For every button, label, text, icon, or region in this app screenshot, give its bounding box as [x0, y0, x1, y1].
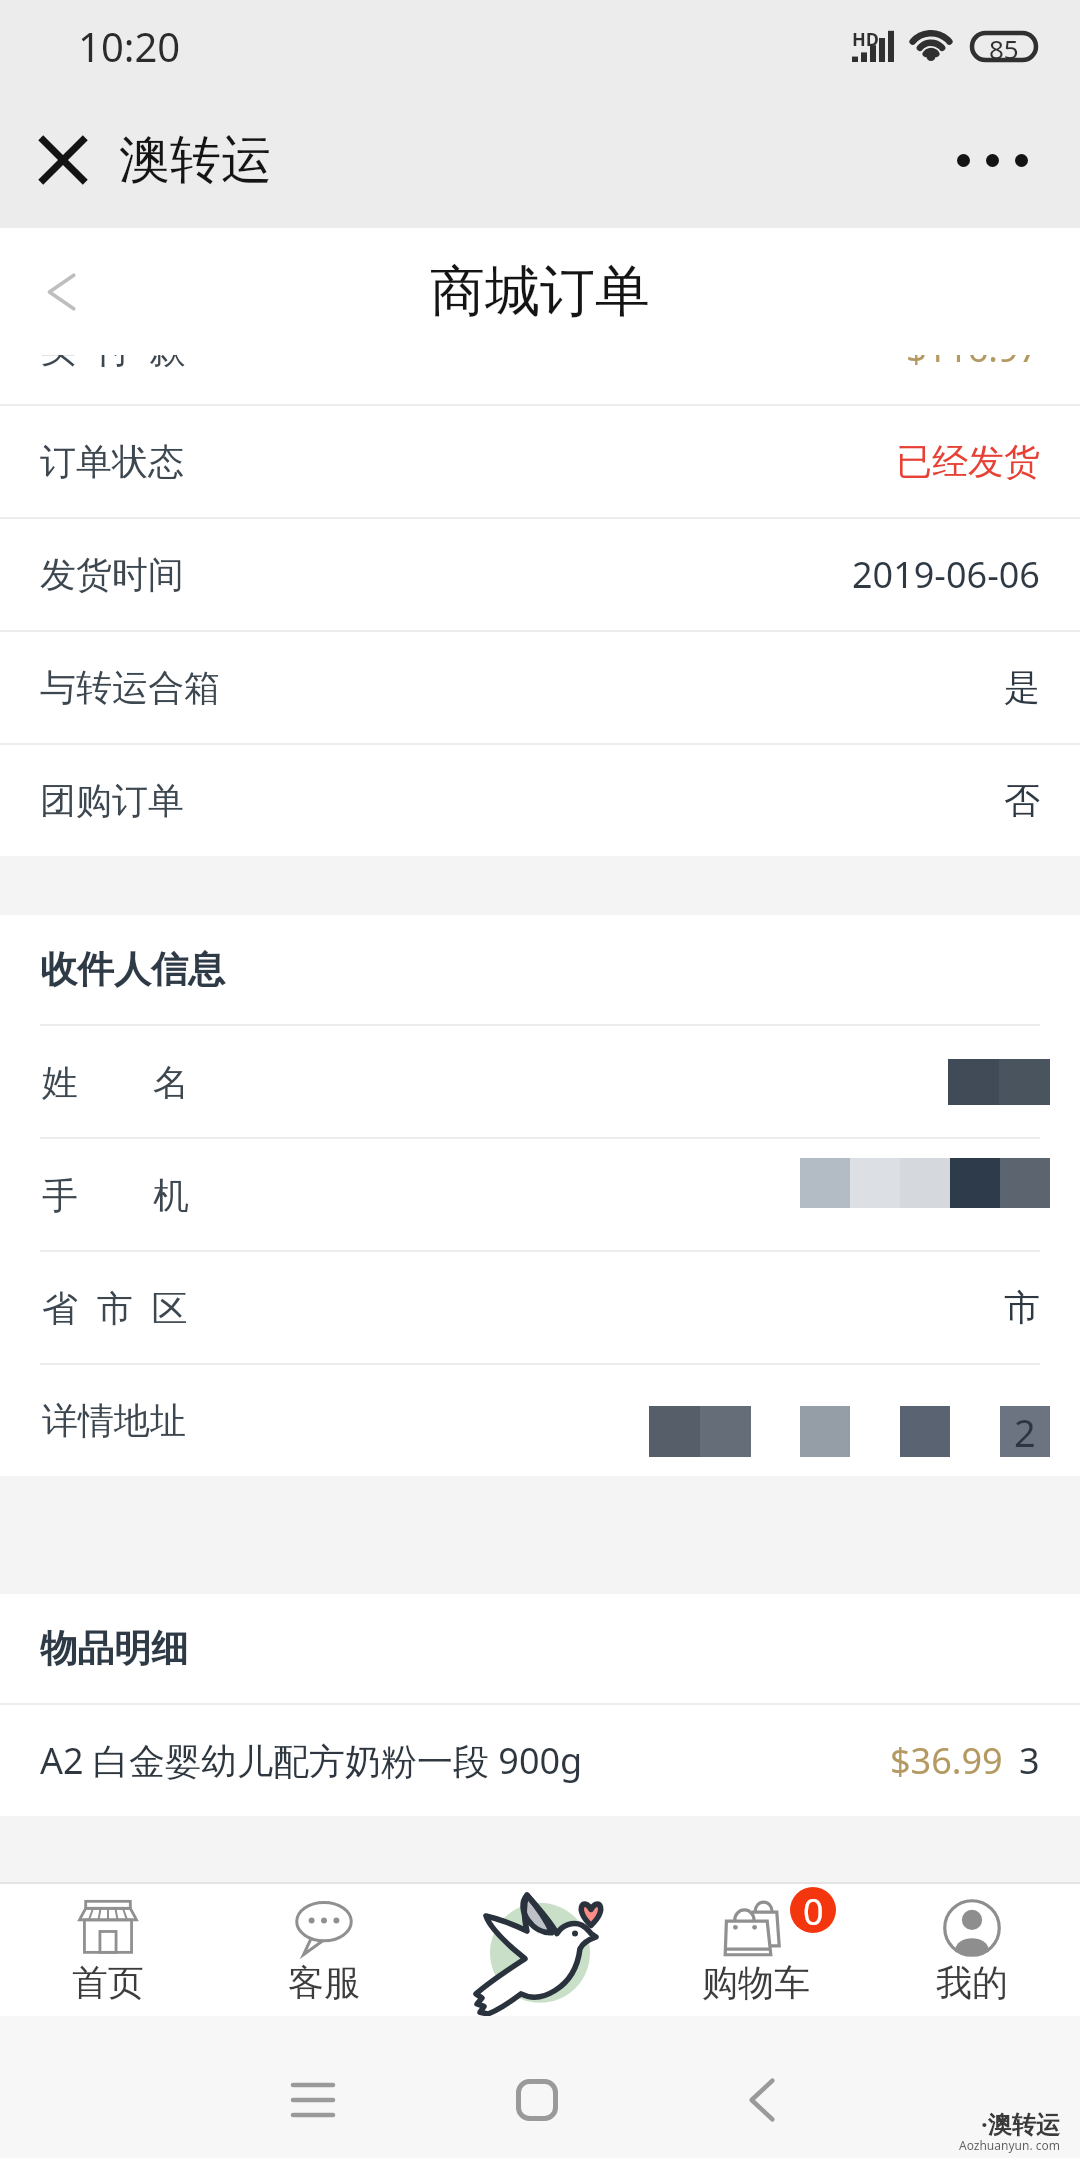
- button[interactable]: 0: [648, 1882, 864, 2016]
- staticText: 否: [1004, 778, 1040, 823]
- button[interactable]: 与转运合箱: [0, 632, 1080, 743]
- staticText: 团购订单: [40, 778, 184, 823]
- staticText: A2 白金婴幼儿配方奶粉一段 900g: [40, 1736, 583, 1785]
- staticText: 0: [803, 1887, 824, 1933]
- staticText: 物品明细: [40, 1625, 188, 1672]
- button[interactable]: 客服: [216, 1882, 432, 2016]
- staticText: 首页: [72, 1960, 144, 2005]
- button[interactable]: 首页: [0, 1882, 216, 2016]
- staticText: 详情地址: [42, 1398, 186, 1443]
- staticText: 姓 名: [42, 1057, 189, 1106]
- button[interactable]: 实 付 款: [0, 355, 1080, 404]
- button[interactable]: Close: [24, 121, 102, 199]
- button[interactable]: 省 市 区: [0, 1252, 1080, 1363]
- button[interactable]: Back: [725, 2072, 799, 2128]
- staticText: $36.99: [890, 1736, 1003, 1785]
- staticText: 10:20: [78, 19, 181, 73]
- button[interactable]: Back: [18, 242, 106, 342]
- staticText: 澳转运: [119, 128, 272, 192]
- staticText: 购物车: [702, 1960, 810, 2005]
- staticText: 实 付 款: [40, 355, 186, 373]
- staticText: 手 机: [42, 1170, 189, 1219]
- button[interactable]: 姓 名: [0, 1026, 1080, 1137]
- button[interactable]: 手 机: [0, 1139, 1080, 1250]
- staticText: 收件人信息: [40, 946, 225, 993]
- staticText: 客服: [288, 1960, 360, 2005]
- button[interactable]: 订单状态: [0, 406, 1080, 517]
- staticText: ·澳转运: [981, 2107, 1060, 2140]
- button[interactable]: Home: [500, 2072, 574, 2128]
- button[interactable]: 澳转运: [115, 110, 276, 210]
- staticText: HD: [852, 27, 879, 52]
- staticText: 发货时间: [40, 552, 184, 597]
- staticText: 与转运合箱: [40, 665, 220, 710]
- staticText: 市: [1004, 1285, 1040, 1330]
- staticText: 是: [1004, 665, 1040, 710]
- staticText: 已经发货: [896, 439, 1040, 484]
- staticText: 2019-06-06: [852, 550, 1040, 599]
- staticText: 85: [989, 31, 1019, 62]
- staticText: Aozhuanyun. com: [959, 2137, 1060, 2153]
- button[interactable]: More options: [905, 124, 1080, 197]
- staticText: 省 市 区: [42, 1283, 188, 1332]
- button[interactable]: 发货时间: [0, 519, 1080, 630]
- button[interactable]: A2 白金婴幼儿配方奶粉一段 900g: [0, 1705, 1080, 1816]
- button[interactable]: Recents: [276, 2072, 350, 2128]
- staticText: 2: [1014, 1406, 1036, 1457]
- staticText: 订单状态: [40, 439, 184, 484]
- staticText: 商城订单: [430, 257, 650, 326]
- staticText: 3: [1019, 1736, 1040, 1785]
- staticText: $116.97: [906, 355, 1040, 373]
- staticText: 我的: [936, 1960, 1008, 2005]
- button[interactable]: 我的: [864, 1882, 1080, 2016]
- button[interactable]: Dove home: [432, 1882, 648, 2016]
- button[interactable]: 团购订单: [0, 745, 1080, 856]
- button[interactable]: 详情地址: [0, 1365, 1080, 1476]
